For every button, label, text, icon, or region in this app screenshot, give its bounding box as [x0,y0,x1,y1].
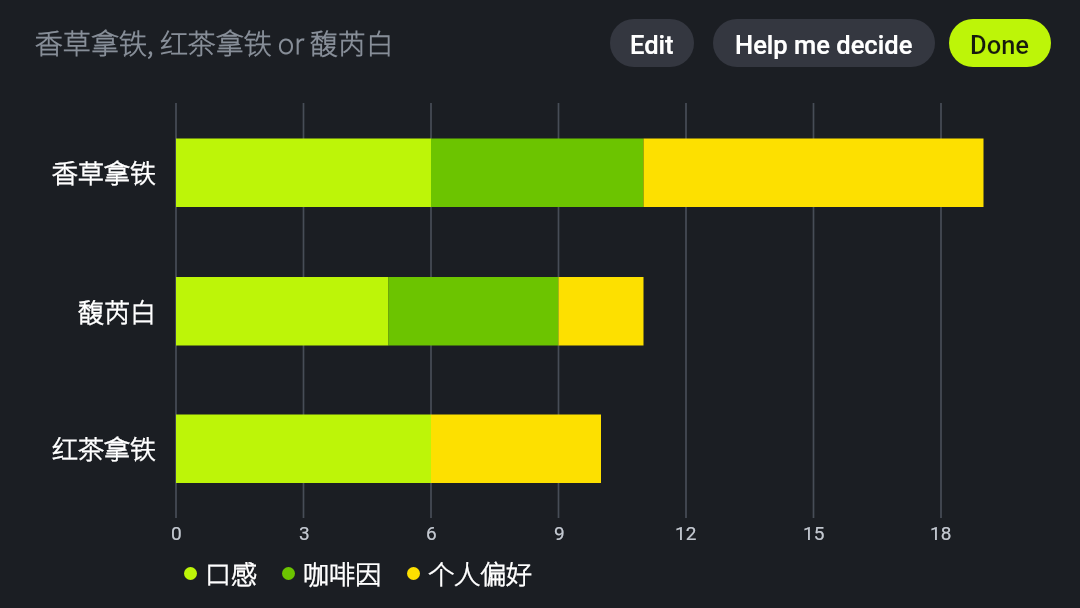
staticText: 香草拿铁 [52,153,157,191]
button[interactable]: Edit [610,19,694,67]
button[interactable]: 咖啡因 [282,554,382,592]
button[interactable]: 个人偏好 [407,554,533,592]
button[interactable]: 口感 [184,554,258,592]
staticText: 咖啡因 [303,554,382,592]
button[interactable]: 馥芮白 [0,276,625,345]
button[interactable]: 香草拿铁 [0,137,965,206]
staticText: 3 [299,522,310,544]
staticText: Help me decide [735,30,913,60]
button[interactable]: Done [949,19,1051,67]
staticText: 15 [803,522,825,544]
button[interactable]: Help me decide [713,19,935,67]
staticText: Done [970,30,1030,60]
staticText: 0 [171,522,182,544]
staticText: 馥芮白 [78,292,157,330]
button[interactable]: 红茶拿铁 [0,413,582,482]
staticText: 红茶拿铁 [52,429,157,467]
staticText: 香草拿铁, 红茶拿铁 or 馥芮白 [35,22,394,63]
staticText: 9 [554,522,565,544]
staticText: Edit [630,30,674,60]
staticText: 个人偏好 [428,554,533,592]
staticText: 18 [930,522,952,544]
staticText: 12 [675,522,697,544]
staticText: 6 [426,522,437,544]
staticText: 口感 [205,554,258,592]
